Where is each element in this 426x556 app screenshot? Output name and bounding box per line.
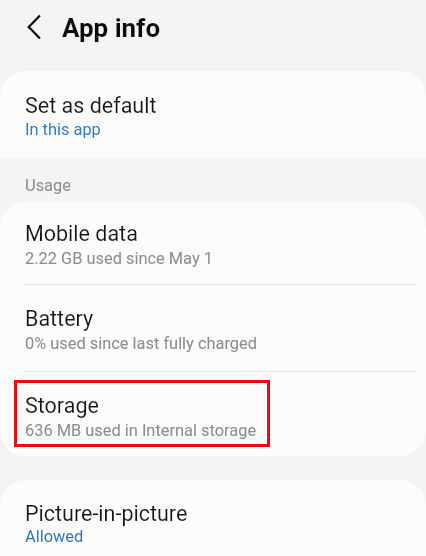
button[interactable]: Set as default: [0, 71, 426, 158]
staticText: Allowed: [25, 527, 84, 546]
button[interactable]: Battery: [0, 285, 426, 371]
button[interactable]: Storage: [0, 372, 426, 456]
staticText: 2.22 GB used since May 1: [25, 249, 213, 268]
staticText: App info: [62, 13, 161, 43]
staticText: Set as default: [25, 93, 157, 118]
staticText: Battery: [25, 306, 94, 331]
staticText: In this app: [25, 120, 101, 139]
staticText: 0% used since last fully charged: [25, 334, 257, 353]
staticText: Picture-in-picture: [25, 501, 188, 526]
staticText: Storage: [25, 393, 99, 418]
staticText: Usage: [25, 176, 71, 195]
staticText: 636 MB used in Internal storage: [25, 421, 257, 440]
button[interactable]: Picture-in-picture: [0, 480, 426, 556]
button[interactable]: Navigate up: [16, 9, 52, 45]
staticText: Mobile data: [25, 221, 138, 246]
button[interactable]: Mobile data: [0, 202, 426, 284]
